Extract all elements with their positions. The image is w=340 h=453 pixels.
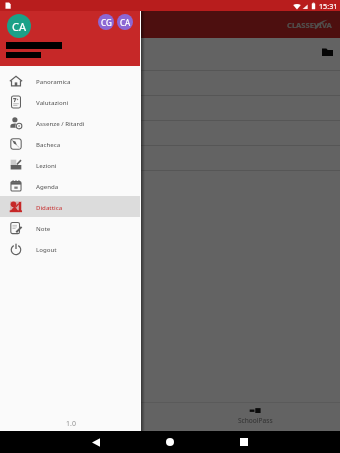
staticText: VIVA (314, 20, 332, 30)
button[interactable] (0, 146, 340, 170)
button[interactable]: Logout (0, 238, 141, 259)
button[interactable]: Recent apps (233, 431, 255, 453)
staticText: Lezioni (36, 161, 57, 169)
staticText: CG (101, 17, 112, 28)
staticText: Agenda (36, 182, 59, 190)
button[interactable]: Folder (0, 38, 333, 65)
staticText: Bacheca (36, 140, 61, 148)
button[interactable]: Lezioni (0, 154, 141, 175)
other: SchoolPass logo (248, 407, 262, 414)
staticText: CA (120, 17, 131, 28)
staticText: CLASSE (287, 20, 314, 30)
staticText: CA (12, 19, 26, 34)
button[interactable]: Bacheca (0, 133, 141, 154)
button[interactable]: Back (85, 431, 107, 453)
staticText: Logout (36, 245, 57, 253)
button[interactable]: Note (0, 217, 141, 238)
button[interactable]: Assenze / Ritardi (0, 112, 141, 133)
button[interactable]: Agenda (0, 175, 141, 196)
button[interactable]: Valutazioni (0, 91, 141, 112)
button[interactable]: CG (98, 14, 114, 30)
staticText: Panoramica (36, 77, 71, 85)
button[interactable] (0, 96, 340, 120)
other: Folder (322, 48, 333, 56)
button[interactable]: Panoramica (0, 70, 141, 91)
staticText: 1.0 (66, 419, 76, 429)
button[interactable] (0, 71, 340, 95)
button[interactable]: CA (117, 14, 133, 30)
button[interactable] (0, 121, 340, 145)
button[interactable]: SchoolPass logo (170, 407, 340, 431)
staticText: Note (36, 224, 51, 232)
button[interactable] (0, 171, 340, 195)
button[interactable]: CA (7, 14, 31, 38)
staticText: Didattica (36, 203, 63, 211)
staticText: Assenze / Ritardi (36, 119, 85, 127)
staticText: SchoolPass (238, 416, 273, 425)
button[interactable]: Home (159, 431, 181, 453)
staticText: Valutazioni (36, 98, 69, 106)
staticText: 15:31 (319, 1, 338, 11)
button[interactable]: Didattica (0, 196, 141, 217)
